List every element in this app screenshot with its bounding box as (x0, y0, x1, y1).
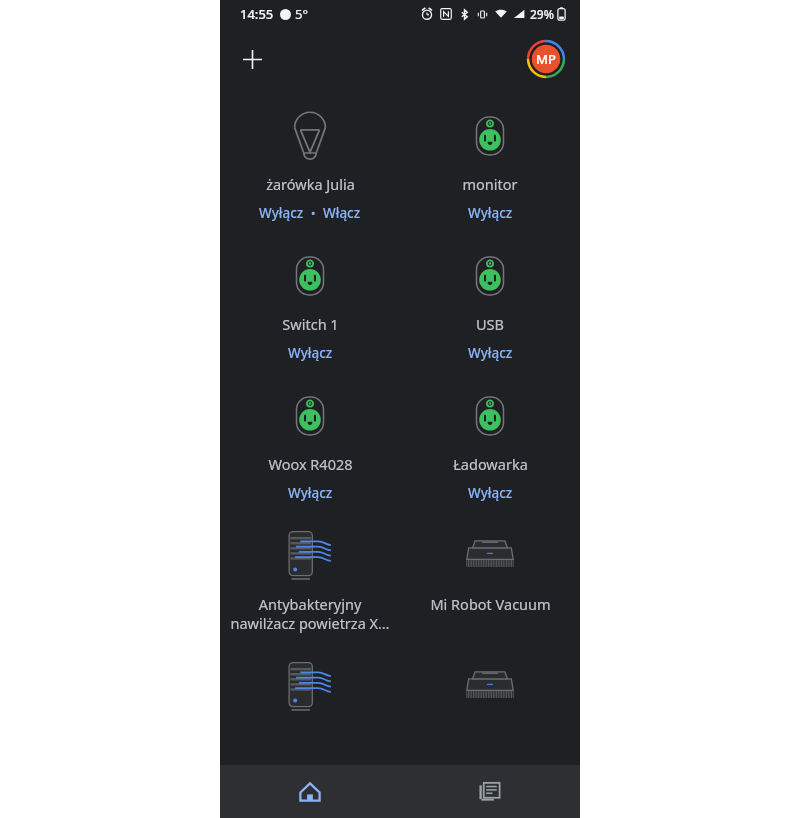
button[interactable]: Wyłącz (288, 484, 333, 502)
button[interactable] (220, 647, 400, 739)
button[interactable]: Wyłącz (468, 484, 513, 502)
button[interactable] (400, 647, 580, 739)
button[interactable]: Mi Robot Vacuum (400, 516, 580, 628)
staticText: Ładowarka (453, 454, 528, 474)
staticText: Wyłącz (259, 204, 304, 222)
staticText: Woox R4028 (268, 454, 353, 474)
button[interactable]: Włącz (323, 204, 361, 222)
button[interactable]: Wyłącz (259, 204, 304, 222)
button[interactable]: Account MP (526, 39, 566, 79)
button[interactable]: Switch 1 (220, 236, 400, 376)
button[interactable]: Wyłącz (468, 204, 513, 222)
staticText: 14:55 (240, 5, 274, 23)
staticText: Switch 1 (282, 314, 339, 334)
button[interactable]: Feed (400, 765, 580, 818)
button[interactable]: Antybakteryjny nawilżacz powietrza XYZ (220, 516, 400, 647)
button[interactable]: USB (400, 236, 580, 376)
staticText: 29% (530, 6, 554, 22)
staticText: Włącz (323, 204, 361, 222)
button[interactable]: Home (220, 765, 400, 818)
button[interactable]: Ładowarka (400, 376, 580, 516)
staticText: USB (476, 314, 504, 334)
button[interactable]: monitor (400, 96, 580, 236)
staticText: Wyłącz (288, 484, 333, 502)
staticText: Wyłącz (468, 344, 513, 362)
button[interactable]: żarówka Julia (220, 96, 400, 236)
staticText: MP (536, 50, 556, 68)
staticText: Wyłącz (288, 344, 333, 362)
staticText: Antybakteryjny nawilżacz powietrza XYZ (228, 594, 392, 633)
button[interactable]: Wyłącz (288, 344, 333, 362)
staticText: monitor (462, 174, 518, 194)
button[interactable]: Woox R4028 (220, 376, 400, 516)
staticText: • (304, 204, 323, 222)
button[interactable]: Wyłącz (468, 344, 513, 362)
staticText: żarówka Julia (266, 174, 355, 194)
button[interactable]: Add device (230, 37, 274, 81)
staticText: Mi Robot Vacuum (430, 594, 551, 614)
staticText: Wyłącz (468, 204, 513, 222)
staticText: 5° (295, 5, 309, 23)
staticText: Wyłącz (468, 484, 513, 502)
